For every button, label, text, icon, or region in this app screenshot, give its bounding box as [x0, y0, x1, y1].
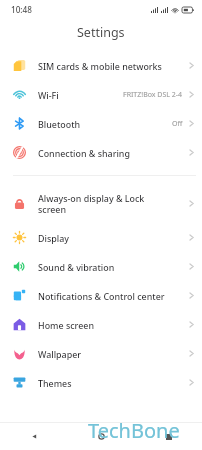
- button[interactable]: Home screen: [0, 310, 202, 339]
- staticText: Off: [172, 119, 183, 129]
- button[interactable]: Home: [68, 423, 135, 450]
- staticText: SIM cards & mobile networks: [38, 60, 162, 72]
- staticText: Display: [38, 232, 69, 244]
- staticText: Bluetooth: [38, 118, 81, 130]
- staticText: Settings: [77, 24, 125, 41]
- button[interactable]: Recent apps: [135, 423, 202, 450]
- button[interactable]: Wi-Fi: [0, 80, 202, 109]
- button[interactable]: Wallpaper: [0, 339, 202, 368]
- button[interactable]: Themes: [0, 368, 202, 397]
- button[interactable]: Display: [0, 223, 202, 252]
- button[interactable]: SIM cards & mobile networks: [0, 51, 202, 80]
- staticText: Wallpaper: [38, 348, 82, 360]
- staticText: Notifications & Control center: [38, 290, 165, 302]
- button[interactable]: Bluetooth: [0, 109, 202, 138]
- button[interactable]: Connection & sharing: [0, 138, 202, 167]
- button[interactable]: Back: [0, 423, 68, 450]
- button[interactable]: Notifications & Control center: [0, 281, 202, 310]
- staticText: 10:48: [11, 4, 32, 15]
- staticText: Wi-Fi: [38, 89, 59, 101]
- staticText: Always-on display & Lock screen: [38, 192, 145, 216]
- button[interactable]: Always-on display & Lock screen: [0, 184, 202, 223]
- staticText: Sound & vibration: [38, 261, 115, 273]
- staticText: Themes: [38, 377, 72, 389]
- staticText: FRITZ!Box DSL 2-4: [123, 90, 183, 100]
- button[interactable]: Sound & vibration: [0, 252, 202, 281]
- staticText: TechBone: [88, 417, 180, 444]
- staticText: Home screen: [38, 319, 94, 331]
- staticText: Connection & sharing: [38, 147, 130, 159]
